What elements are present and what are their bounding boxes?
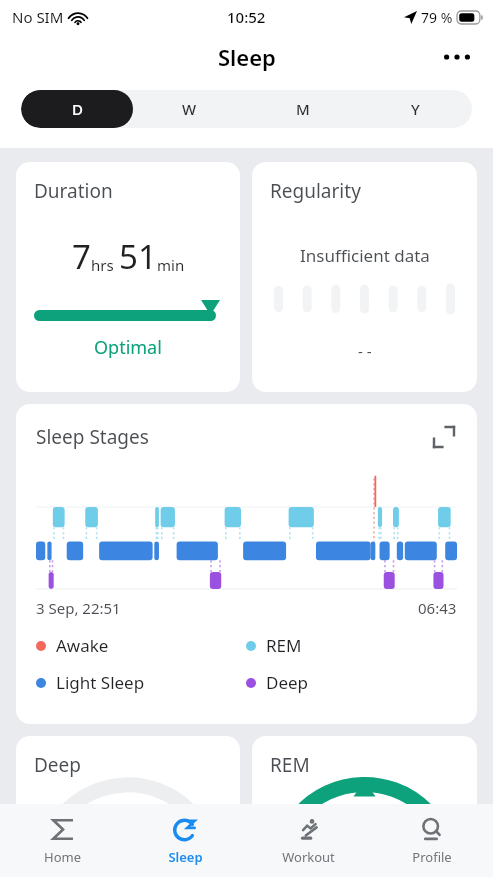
staticText: 7	[72, 234, 91, 279]
button[interactable]: More options	[435, 35, 479, 79]
staticText: Sleep Stages	[36, 424, 149, 450]
button[interactable]: Sleep	[124, 804, 247, 877]
staticText: D	[72, 99, 83, 119]
staticText: M	[296, 99, 310, 119]
button[interactable]: Workout	[247, 804, 370, 877]
staticText: Duration	[34, 178, 113, 204]
button[interactable]: Duration	[16, 162, 240, 392]
staticText: min	[157, 255, 185, 275]
button[interactable]: Sleep Stages	[16, 404, 477, 724]
button[interactable]: Y	[359, 90, 472, 128]
staticText: Sleep	[218, 42, 276, 72]
staticText: 51	[119, 234, 157, 279]
staticText: hrs	[91, 255, 114, 275]
staticText: No SIM	[12, 7, 64, 27]
staticText: Light Sleep	[56, 671, 145, 694]
staticText: W	[182, 99, 197, 119]
staticText: Awake	[56, 634, 109, 657]
button[interactable]: D	[21, 90, 133, 128]
staticText: Deep	[34, 752, 81, 778]
button[interactable]: M	[246, 90, 359, 128]
staticText: REM	[266, 634, 302, 657]
staticText: 10:52	[227, 7, 266, 27]
staticText: 79 %	[421, 8, 453, 27]
staticText: Insufficient data	[300, 244, 430, 267]
staticText: Y	[411, 99, 420, 119]
staticText: Deep	[266, 671, 309, 694]
button[interactable]: Home	[0, 804, 124, 877]
staticText: Workout	[282, 848, 335, 866]
staticText: Home	[44, 848, 81, 866]
button[interactable]: REM	[252, 736, 477, 877]
staticText: - -	[358, 341, 372, 361]
button[interactable]: Regularity	[252, 162, 477, 392]
staticText: Regularity	[270, 178, 361, 204]
staticText: 06:43	[418, 598, 457, 618]
staticText: Sleep	[168, 848, 203, 866]
staticText: Optimal	[94, 335, 162, 360]
button[interactable]: Profile	[370, 804, 493, 877]
button[interactable]: W	[133, 90, 246, 128]
staticText: 3 Sep, 22:51	[36, 598, 121, 618]
button[interactable]: Deep	[16, 736, 240, 877]
staticText: Profile	[412, 848, 452, 866]
staticText: REM	[270, 752, 310, 778]
button[interactable]: Expand chart	[427, 420, 461, 454]
